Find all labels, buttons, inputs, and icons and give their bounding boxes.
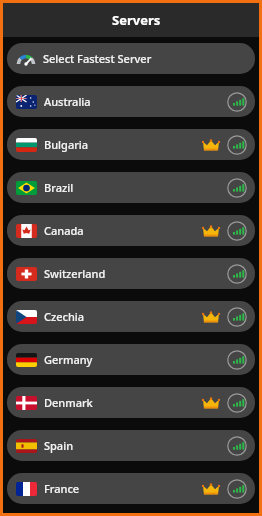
button[interactable]: Germany bbox=[7, 344, 255, 375]
staticText: Bulgaria bbox=[44, 137, 89, 152]
button[interactable]: Signal strength bbox=[227, 264, 247, 284]
button[interactable]: Czechia bbox=[7, 301, 255, 332]
button[interactable]: Signal strength bbox=[227, 178, 247, 198]
staticText: Czechia bbox=[44, 309, 85, 324]
button[interactable]: Signal strength bbox=[227, 221, 247, 241]
other: Premium server bbox=[203, 139, 219, 151]
button[interactable]: Signal strength bbox=[227, 393, 247, 413]
button[interactable]: Signal strength bbox=[227, 92, 247, 112]
button[interactable]: Australia bbox=[7, 86, 255, 117]
button[interactable]: Signal strength bbox=[227, 307, 247, 327]
button[interactable]: France bbox=[7, 473, 255, 504]
button[interactable]: Denmark bbox=[7, 387, 255, 418]
staticText: Servers bbox=[112, 11, 161, 29]
staticText: France bbox=[44, 481, 80, 496]
button[interactable]: Signal strength bbox=[227, 436, 247, 456]
button[interactable]: Signal strength bbox=[227, 135, 247, 155]
other: Premium server bbox=[203, 225, 219, 237]
other: Premium server bbox=[203, 311, 219, 323]
staticText: Canada bbox=[44, 223, 84, 238]
button[interactable]: Brazil bbox=[7, 172, 255, 203]
staticText: Australia bbox=[44, 94, 91, 109]
staticText: Brazil bbox=[44, 180, 74, 195]
button[interactable]: Canada bbox=[7, 215, 255, 246]
staticText: Switzerland bbox=[44, 266, 106, 281]
staticText: Denmark bbox=[44, 395, 93, 410]
other: Premium server bbox=[203, 397, 219, 409]
button[interactable]: Switzerland bbox=[7, 258, 255, 289]
other: Premium server bbox=[203, 483, 219, 495]
button[interactable]: Signal strength bbox=[227, 479, 247, 499]
button[interactable]: Signal strength bbox=[227, 350, 247, 370]
button[interactable]: Bulgaria bbox=[7, 129, 255, 160]
staticText: Germany bbox=[44, 352, 93, 367]
staticText: Select Fastest Server bbox=[43, 51, 152, 66]
button[interactable]: Select Fastest Server bbox=[7, 43, 255, 74]
staticText: Spain bbox=[44, 438, 74, 453]
button[interactable]: Spain bbox=[7, 430, 255, 461]
